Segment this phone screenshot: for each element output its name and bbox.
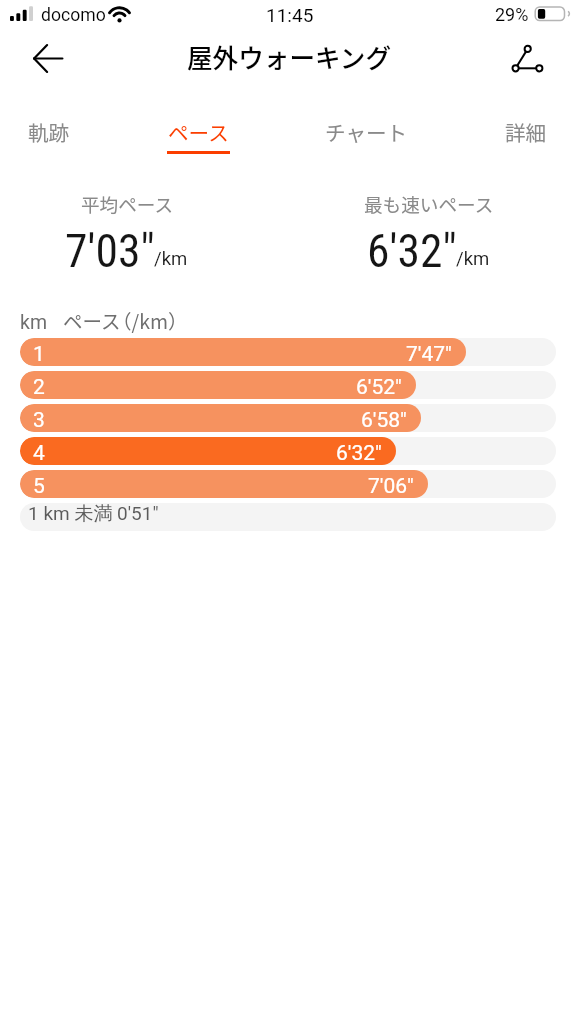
staticText: 3 — [33, 408, 45, 432]
staticText: 5 — [33, 474, 45, 498]
button[interactable]: 4 — [20, 437, 556, 465]
button[interactable]: 1 km 未満 0'51" — [20, 503, 556, 531]
staticText: （/km） — [112, 306, 188, 334]
button[interactable]: Back — [24, 34, 72, 82]
staticText: 6'58" — [361, 408, 407, 432]
staticText: 6'52" — [356, 375, 402, 399]
staticText: 1 — [33, 342, 45, 366]
staticText: 最も速いペース — [364, 190, 494, 217]
button[interactable]: 2 — [20, 371, 556, 399]
button[interactable]: 詳細 — [454, 117, 576, 169]
staticText: 6'32" — [336, 441, 382, 465]
button[interactable]: Share — [503, 34, 551, 82]
button[interactable]: 5 — [20, 470, 556, 498]
button[interactable]: ペース — [126, 117, 270, 169]
staticText: 6'32" — [367, 225, 457, 278]
staticText: 7'06" — [368, 474, 414, 498]
staticText: /km — [154, 248, 188, 270]
staticText: ペース — [168, 117, 229, 147]
staticText: 4 — [33, 441, 45, 465]
staticText: 11:45 — [266, 4, 314, 26]
staticText: 29% — [495, 4, 529, 25]
staticText: チャート — [325, 117, 408, 147]
button[interactable]: 3 — [20, 404, 556, 432]
button[interactable]: 1 — [20, 338, 556, 366]
staticText: 1 km 未満 0'51" — [28, 503, 159, 526]
staticText: 詳細 — [505, 117, 547, 147]
staticText: km — [20, 311, 47, 334]
staticText: 7'47" — [406, 342, 452, 366]
staticText: 平均ペース — [81, 190, 174, 217]
button[interactable]: 軌跡 — [0, 117, 121, 169]
staticText: 屋外ウォーキング — [187, 38, 391, 75]
staticText: docomo — [41, 5, 106, 26]
staticText: 軌跡 — [28, 117, 70, 147]
button[interactable]: チャート — [294, 117, 438, 169]
staticText: 7'03" — [65, 225, 155, 278]
staticText: 2 — [33, 375, 45, 399]
staticText: /km — [456, 248, 490, 270]
staticText: ペース — [63, 306, 121, 334]
